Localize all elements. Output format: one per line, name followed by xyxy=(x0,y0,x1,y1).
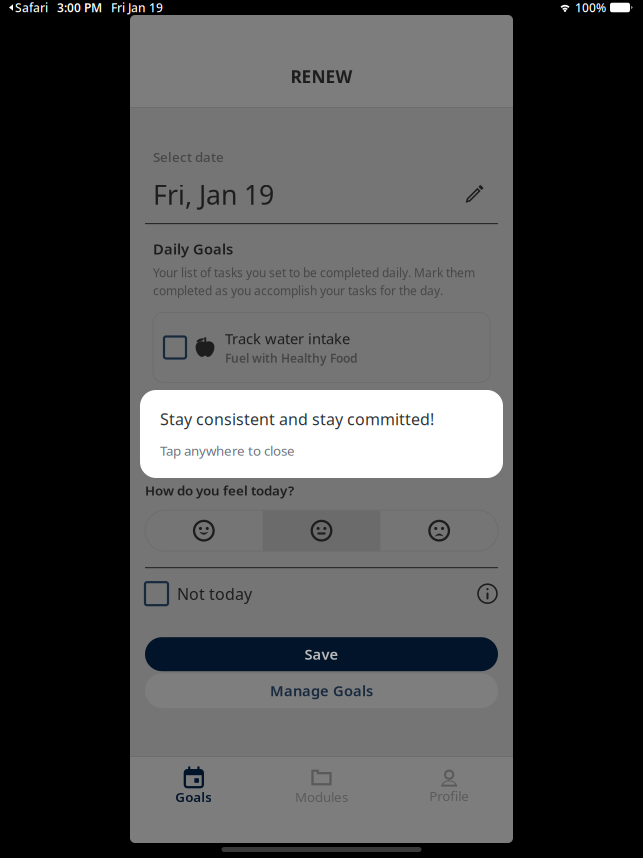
staticText: Your list of tasks you set to be complet… xyxy=(153,265,475,280)
staticText: How do you feel today? xyxy=(145,481,294,499)
staticText: 100% xyxy=(575,0,606,15)
staticText: Tap anywhere to close xyxy=(160,442,295,459)
staticText: Goals xyxy=(175,788,212,806)
staticText: Fri Jan 19 xyxy=(111,0,163,15)
button[interactable]: Modules xyxy=(258,767,385,806)
button[interactable]: Profile xyxy=(385,768,513,805)
staticText: 3:00 PM xyxy=(57,0,102,15)
button[interactable]: Edit date xyxy=(465,185,483,203)
button[interactable]: Happy xyxy=(145,510,263,551)
staticText: Daily Goals xyxy=(153,239,233,259)
staticText: Not today xyxy=(177,583,252,604)
staticText: completed as you accomplish your tasks f… xyxy=(153,282,443,298)
button[interactable]: Sad xyxy=(380,510,498,551)
button[interactable]: Not today xyxy=(145,582,252,605)
button[interactable]: Goals xyxy=(130,767,258,806)
staticText: Fuel with Healthy Food xyxy=(225,350,358,366)
button[interactable]: Neutral xyxy=(263,510,380,551)
button[interactable]: Stay consistent and stay committed! xyxy=(140,390,503,478)
staticText: Stay consistent and stay committed! xyxy=(160,408,434,430)
button[interactable]: Track water intake xyxy=(153,312,490,382)
staticText: Fri, Jan 19 xyxy=(153,177,274,212)
staticText: Profile xyxy=(429,787,469,805)
staticText: Save xyxy=(304,644,338,664)
staticText: Modules xyxy=(295,788,348,806)
staticText: Manage Goals xyxy=(270,681,373,700)
button[interactable]: Manage Goals xyxy=(145,673,498,708)
staticText: RENEW xyxy=(290,65,352,88)
staticText: Select date xyxy=(153,148,224,166)
staticText: Track water intake xyxy=(225,329,350,348)
button[interactable]: Save xyxy=(145,637,498,671)
staticText: Safari xyxy=(15,0,48,15)
button[interactable]: Information xyxy=(477,583,498,604)
